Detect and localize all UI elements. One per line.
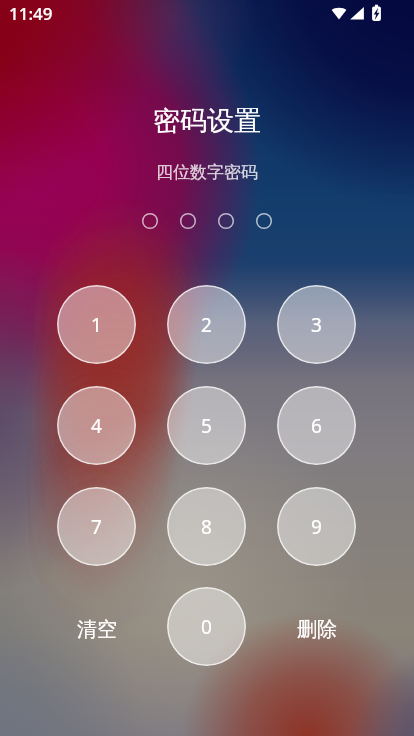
staticText: 8 [201, 514, 212, 540]
button[interactable]: 2 [167, 285, 246, 364]
staticText: 密码设置 [153, 104, 261, 138]
staticText: 清空 [77, 617, 117, 642]
staticText: 3 [311, 312, 322, 338]
button[interactable]: 0 [167, 587, 246, 666]
staticText: 0 [201, 614, 212, 640]
button[interactable]: 8 [167, 487, 246, 566]
button[interactable]: 1 [57, 285, 136, 364]
staticText: 4 [91, 413, 102, 439]
staticText: 2 [201, 312, 212, 338]
button[interactable]: 7 [57, 487, 136, 566]
other: Battery charging [370, 4, 383, 22]
other: Wi-Fi [331, 5, 347, 21]
staticText: 5 [201, 413, 212, 439]
staticText: 1 [91, 312, 102, 338]
other: Mobile signal [349, 5, 365, 21]
button[interactable]: 删除 [274, 601, 360, 657]
staticText: 四位数字密码 [156, 162, 258, 183]
button[interactable]: 清空 [54, 601, 140, 657]
button[interactable]: 9 [277, 487, 356, 566]
button[interactable]: 3 [277, 285, 356, 364]
button[interactable]: 6 [277, 386, 356, 465]
staticText: 11:49 [9, 2, 53, 25]
button[interactable]: 4 [57, 386, 136, 465]
staticText: 6 [311, 413, 322, 439]
staticText: 7 [91, 514, 102, 540]
button[interactable]: 5 [167, 386, 246, 465]
staticText: 9 [311, 514, 322, 540]
staticText: 删除 [297, 617, 337, 642]
